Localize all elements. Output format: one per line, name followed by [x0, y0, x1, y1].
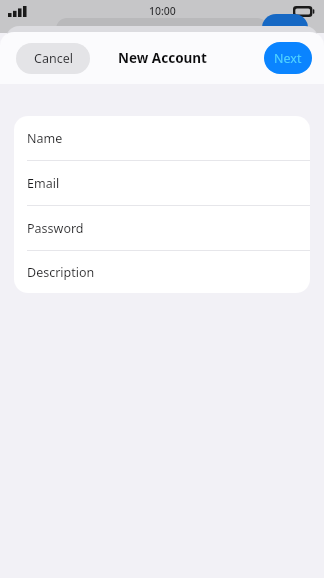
- staticText: New Account: [118, 49, 207, 67]
- staticText: Password: [27, 220, 84, 237]
- button[interactable]: Description: [14, 251, 310, 293]
- staticText: Description: [27, 264, 95, 281]
- staticText: Name: [27, 130, 63, 147]
- staticText: Email: [27, 175, 60, 192]
- staticText: 10:00: [149, 4, 176, 18]
- button[interactable]: Name: [14, 116, 310, 160]
- staticText: Cancel: [34, 50, 73, 67]
- button[interactable]: Email: [14, 161, 310, 205]
- button[interactable]: Password: [14, 206, 310, 250]
- staticText: Next: [274, 50, 302, 67]
- button[interactable]: Next: [264, 42, 312, 74]
- button[interactable]: Cancel: [16, 43, 90, 74]
